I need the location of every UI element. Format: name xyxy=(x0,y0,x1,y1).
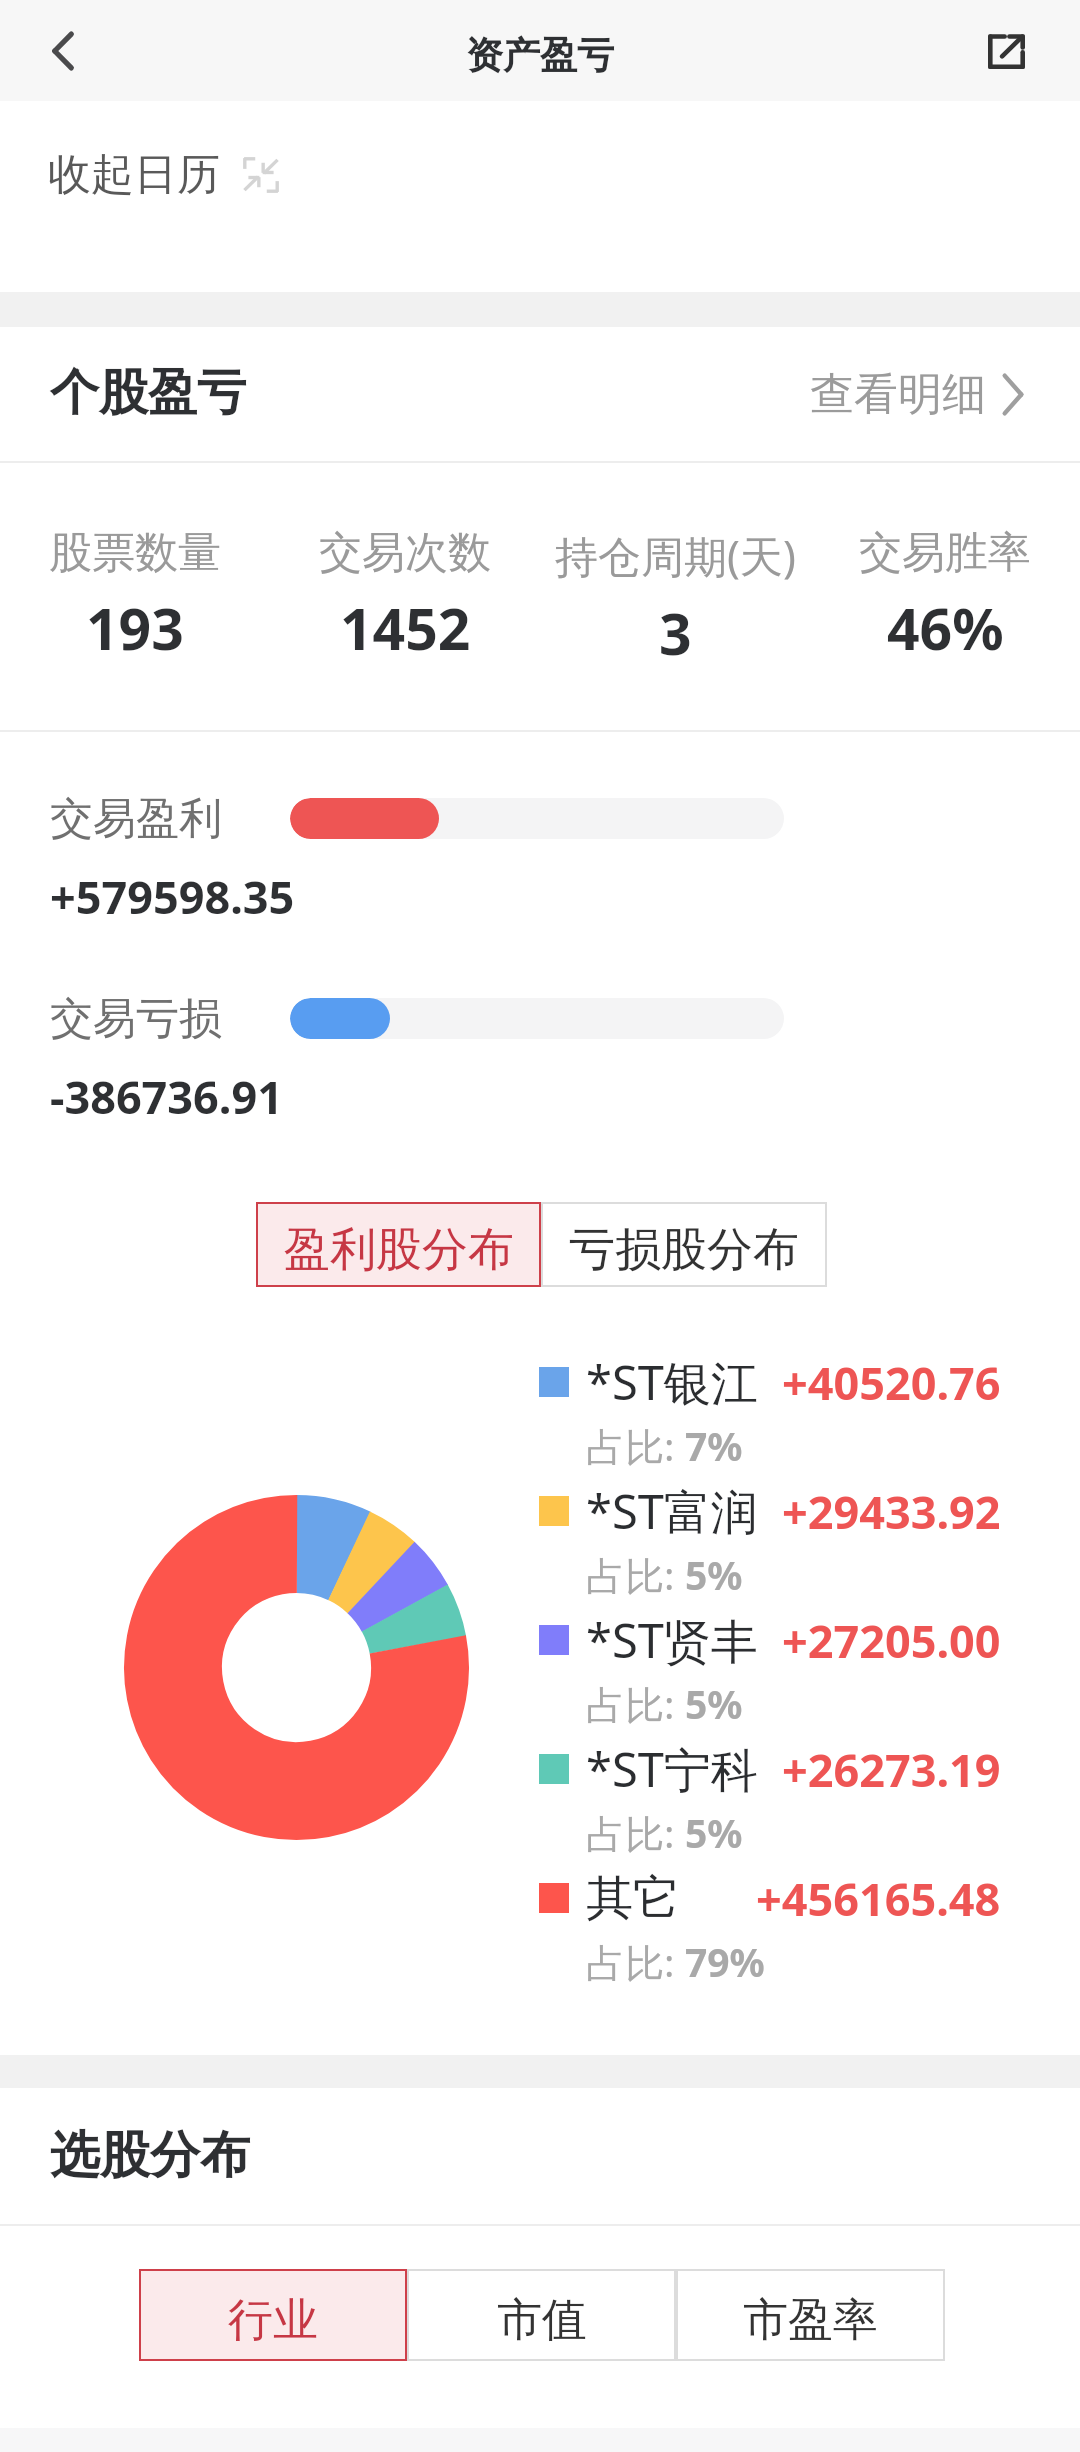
button[interactable]: 市盈率 xyxy=(676,2269,945,2361)
button[interactable]: 查看明细 xyxy=(810,339,1026,449)
staticText: 交易次数 xyxy=(319,526,491,580)
staticText: 5% xyxy=(685,1806,743,1859)
staticText: 占比: xyxy=(586,1419,685,1472)
staticText: +29433.92 xyxy=(782,1481,1001,1542)
staticText: 股票数量 xyxy=(49,526,221,580)
staticText: 资产盈亏 xyxy=(466,32,614,79)
staticText: *ST宁科 xyxy=(586,1737,758,1801)
button[interactable]: 收起日历 xyxy=(48,136,279,214)
button[interactable]: 股票数量 xyxy=(0,463,270,667)
staticText: +579598.35 xyxy=(50,866,295,927)
staticText: -386736.91 xyxy=(50,1066,283,1127)
staticText: 5% xyxy=(685,1548,743,1601)
staticText: 选股分布 xyxy=(50,2124,250,2187)
button[interactable]: 持仓周期(天) xyxy=(540,463,810,672)
staticText: 占比: xyxy=(586,1935,685,1988)
staticText: 市盈率 xyxy=(743,2292,878,2349)
staticText: 行业 xyxy=(228,2292,318,2349)
button[interactable]: Back xyxy=(13,0,113,101)
button[interactable]: *ST富润 xyxy=(539,1477,1001,1606)
button[interactable]: 交易次数 xyxy=(270,463,540,667)
button[interactable]: 行业 xyxy=(139,2269,407,2361)
staticText: 交易胜率 xyxy=(859,526,1031,580)
staticText: *ST银江 xyxy=(586,1350,758,1414)
staticText: 占比: xyxy=(586,1548,685,1601)
staticText: 7% xyxy=(685,1419,743,1472)
button[interactable]: *ST贤丰 xyxy=(539,1606,1001,1735)
staticText: 占比: xyxy=(586,1677,685,1730)
button[interactable]: 亏损股分布 xyxy=(541,1202,827,1287)
staticText: 查看明细 xyxy=(810,367,986,422)
staticText: 个股盈亏 xyxy=(50,362,246,424)
staticText: 193 xyxy=(86,589,184,667)
staticText: 交易盈利 xyxy=(50,792,222,846)
staticText: 持仓周期(天) xyxy=(555,526,796,585)
staticText: 亏损股分布 xyxy=(569,1221,799,1279)
button[interactable]: *ST银江 xyxy=(539,1348,1001,1477)
button[interactable]: Share xyxy=(956,0,1056,101)
button[interactable]: 交易胜率 xyxy=(810,463,1080,667)
staticText: 占比: xyxy=(586,1806,685,1859)
staticText: 收起日历 xyxy=(48,148,220,202)
button[interactable]: *ST宁科 xyxy=(539,1735,1001,1864)
staticText: +456165.48 xyxy=(756,1868,1001,1929)
staticText: *ST富润 xyxy=(586,1479,758,1543)
staticText: +40520.76 xyxy=(782,1352,1001,1413)
button[interactable]: 盈利股分布 xyxy=(256,1202,541,1287)
staticText: *ST贤丰 xyxy=(586,1608,758,1672)
staticText: 79% xyxy=(685,1935,765,1988)
staticText: 交易亏损 xyxy=(50,992,222,1046)
staticText: 其它 xyxy=(586,1869,680,1928)
button[interactable]: 其它 xyxy=(539,1864,1001,1993)
staticText: +26273.19 xyxy=(782,1739,1001,1800)
button[interactable]: 市值 xyxy=(407,2269,676,2361)
staticText: 1452 xyxy=(340,589,471,667)
staticText: 46% xyxy=(887,589,1004,667)
staticText: 盈利股分布 xyxy=(284,1221,514,1279)
staticText: 5% xyxy=(685,1677,743,1730)
staticText: 市值 xyxy=(497,2292,587,2349)
staticText: 3 xyxy=(659,594,692,672)
staticText: +27205.00 xyxy=(782,1610,1001,1671)
